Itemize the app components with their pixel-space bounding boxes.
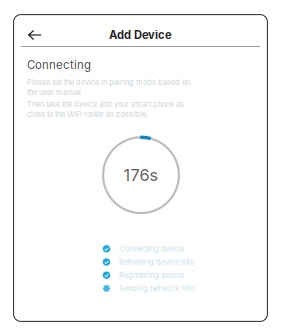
staticText: Sending network info xyxy=(119,284,195,293)
staticText: Please set the device in pairing mode ba… xyxy=(27,78,190,97)
staticText: 176s xyxy=(123,165,158,185)
staticText: Connecting xyxy=(27,58,91,72)
staticText: Add Device xyxy=(109,28,172,42)
button[interactable]: Back xyxy=(13,24,50,46)
staticText: Connecting device xyxy=(119,244,184,253)
staticText: Retrieving device info xyxy=(119,257,195,267)
staticText: Registering device xyxy=(119,271,184,280)
staticText: Then take the device and your smart phon… xyxy=(27,100,184,119)
